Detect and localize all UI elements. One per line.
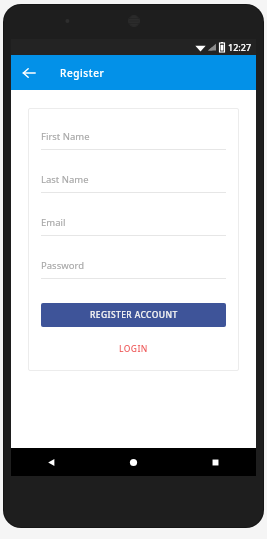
button[interactable]: Navigate up <box>11 55 46 90</box>
button[interactable]: Back <box>11 448 92 476</box>
staticText: Last Name <box>41 173 89 186</box>
button[interactable]: Home <box>92 448 174 476</box>
button[interactable]: Email <box>41 216 226 236</box>
staticText: 12:27 <box>228 41 252 53</box>
staticText: REGISTER ACCOUNT <box>90 309 178 321</box>
staticText: LOGIN <box>119 343 148 355</box>
button[interactable]: Recent apps <box>174 448 256 476</box>
staticText: Password <box>41 259 84 272</box>
button[interactable]: LOGIN <box>41 340 226 358</box>
staticText: Register <box>60 66 105 80</box>
staticText: First Name <box>41 130 90 143</box>
staticText: Email <box>41 216 66 229</box>
button[interactable]: Last Name <box>41 173 226 193</box>
button[interactable]: First Name <box>41 130 226 150</box>
button[interactable]: Password <box>41 259 226 279</box>
button[interactable]: REGISTER ACCOUNT <box>41 303 226 327</box>
